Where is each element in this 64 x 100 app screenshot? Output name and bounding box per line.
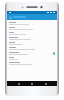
button[interactable]: Toggle bbox=[7, 51, 57, 56]
button[interactable]: Recent apps bbox=[17, 82, 21, 86]
button[interactable] bbox=[7, 21, 57, 26]
button[interactable]: Navigate up bbox=[9, 16, 12, 19]
button[interactable] bbox=[7, 26, 57, 31]
button[interactable] bbox=[7, 31, 57, 36]
button[interactable] bbox=[7, 56, 57, 61]
button[interactable] bbox=[7, 36, 57, 41]
button[interactable] bbox=[7, 61, 57, 66]
button[interactable] bbox=[7, 46, 57, 51]
button[interactable]: Toggle bbox=[52, 52, 55, 55]
button[interactable]: Home bbox=[30, 82, 34, 86]
button[interactable] bbox=[7, 41, 57, 46]
button[interactable]: Back bbox=[44, 82, 48, 86]
